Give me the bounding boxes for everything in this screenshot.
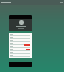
button[interactable] xyxy=(9,51,32,54)
button[interactable] xyxy=(9,54,32,57)
button[interactable] xyxy=(0,0,64,5)
button[interactable]: App logo xyxy=(19,20,24,25)
button[interactable] xyxy=(9,42,32,45)
button[interactable] xyxy=(9,45,32,48)
button[interactable] xyxy=(9,39,32,42)
button[interactable] xyxy=(9,36,32,39)
button[interactable] xyxy=(9,33,32,36)
button[interactable] xyxy=(9,48,32,51)
